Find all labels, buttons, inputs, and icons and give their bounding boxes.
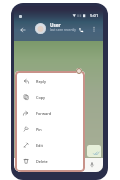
staticText: Reply: [36, 79, 46, 84]
staticText: Copy: [36, 95, 46, 100]
staticText: User: [50, 22, 61, 28]
button[interactable]: Edit: [15, 137, 85, 153]
button[interactable]: Call: [76, 25, 86, 35]
button[interactable]: Back: [18, 25, 28, 35]
staticText: Forward: [36, 111, 52, 116]
button[interactable]: Delete: [15, 153, 85, 169]
button[interactable]: Profile photo: [35, 23, 46, 34]
button[interactable]: Voice message: [87, 160, 97, 170]
staticText: 5:01: [90, 13, 99, 19]
button[interactable]: Reply: [15, 73, 85, 89]
button[interactable]: More options: [89, 24, 99, 34]
button[interactable]: Forward: [15, 105, 85, 121]
button[interactable]: Copy: [15, 89, 85, 105]
staticText: Edit: [36, 143, 43, 148]
button[interactable]: Pin: [15, 121, 85, 137]
staticText: Pin: [36, 127, 42, 132]
staticText: Delete: [36, 159, 48, 164]
staticText: last seen recently: [50, 28, 76, 32]
